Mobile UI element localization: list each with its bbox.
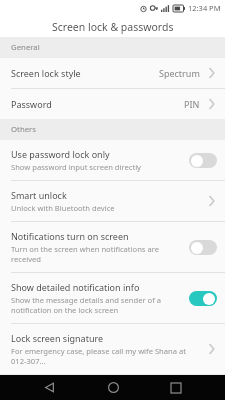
staticText: Show the message details and sender of a… — [11, 295, 183, 315]
other: Open — [207, 194, 217, 208]
other: Open — [207, 342, 217, 356]
button[interactable]: Notifications turn on screen — [0, 222, 225, 272]
staticText: Use password lock only — [11, 148, 110, 160]
staticText: Lock screen signature — [11, 332, 104, 344]
button[interactable]: Back — [34, 375, 64, 400]
staticText: Unlock with Bluetooth device — [11, 203, 115, 213]
button[interactable]: Toggle off — [189, 153, 217, 168]
button[interactable]: Toggle on — [189, 291, 217, 306]
button[interactable]: Recents — [161, 375, 191, 400]
button[interactable]: Home — [98, 375, 128, 400]
staticText: Turn on the screen when notifications ar… — [11, 244, 183, 264]
button[interactable]: Screen lock style — [0, 58, 225, 88]
staticText: 12:34 PM — [188, 3, 221, 13]
staticText: Show password input screen directly — [11, 162, 141, 172]
other: Open — [207, 97, 217, 111]
button[interactable]: Toggle off — [189, 240, 217, 255]
staticText: Screen lock & passwords — [52, 20, 174, 34]
staticText: General — [11, 42, 40, 53]
other: Open — [207, 66, 217, 80]
button[interactable]: Lock screen signature — [0, 324, 225, 374]
staticText: Show detailed notification info — [11, 281, 140, 293]
staticText: Spectrum — [159, 67, 200, 79]
staticText: For emergency case, please call my wife … — [11, 346, 205, 366]
staticText: PIN — [184, 98, 200, 110]
button[interactable]: Password — [0, 89, 225, 119]
staticText: Password — [11, 98, 52, 110]
staticText: Screen lock style — [11, 67, 81, 79]
staticText: Others — [11, 124, 37, 135]
button[interactable]: Show detailed notification info — [0, 273, 225, 323]
staticText: Notifications turn on screen — [11, 230, 129, 242]
staticText: Smart unlock — [11, 189, 67, 201]
button[interactable]: Smart unlock — [0, 181, 225, 221]
button[interactable]: Use password lock only — [0, 140, 225, 180]
